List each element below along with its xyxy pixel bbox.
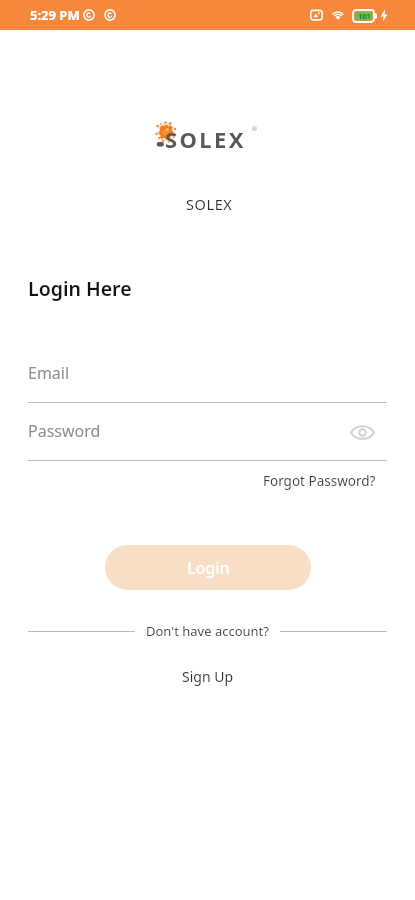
staticText: Password	[28, 420, 101, 442]
button[interactable]: Show password	[349, 419, 375, 445]
staticText: 5:29 PM	[30, 6, 80, 24]
staticText: SOLEX	[186, 194, 233, 214]
button[interactable]: Login	[105, 545, 311, 590]
button[interactable]: Sign Up	[182, 667, 234, 686]
staticText: Login Here	[28, 275, 132, 302]
button[interactable]: Forgot Password?	[263, 472, 376, 490]
staticText: Email	[28, 362, 70, 384]
staticText: 101	[358, 11, 371, 21]
button[interactable]: Email	[0, 354, 415, 394]
staticText: Login	[187, 557, 230, 579]
staticText: Don't have account?	[146, 622, 269, 640]
staticText: ®	[252, 125, 257, 133]
staticText: SOLEX	[165, 124, 246, 154]
button[interactable]: Password	[0, 412, 415, 452]
